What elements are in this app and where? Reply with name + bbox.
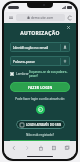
button[interactable]: Share [36,143,45,152]
button[interactable]: Forward [22,143,31,152]
button[interactable]: Close [66,25,70,29]
staticText: Pode fazer login ou não através de: [10,97,70,101]
button[interactable]: Back [9,143,18,152]
staticText: LOGIN ATRAVÉS DO SMS [26,123,62,127]
staticText: FAZER LOGIN [28,85,53,90]
button[interactable]: LOGIN ATRAVÉS DO SMS [16,120,65,129]
staticText: Não está registado? [10,133,70,137]
staticText: Identificação no email [13,45,60,50]
staticText: demo.site.com [31,16,54,20]
button[interactable]: Bookmarks [49,143,58,152]
button[interactable]: Text size [7,15,14,21]
button[interactable]: FAZER LOGIN [10,82,70,92]
staticText: Palavra-passe [13,59,60,64]
staticText: AUTORIZAÇÃO [10,30,70,37]
button[interactable]: Refresh [67,15,73,21]
button[interactable]: Tabs [62,143,71,152]
button[interactable]: Lembrar [10,72,29,76]
button[interactable]: Esqueceu-se da sua palavra-passe? [29,70,70,78]
button[interactable]: Palavra-passe [10,56,70,66]
staticText: Lembrar [16,72,29,76]
button[interactable]: WhatsApp login [36,105,45,114]
button[interactable]: demo.site.com [16,14,65,21]
button[interactable]: Identificação no email [10,42,70,52]
staticText: AA [9,16,13,20]
